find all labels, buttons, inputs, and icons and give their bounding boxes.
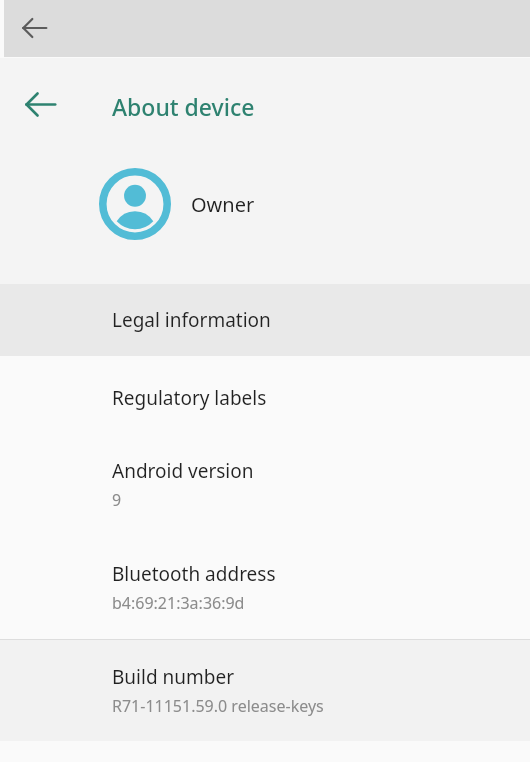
button[interactable]: Regulatory labels [0,356,530,433]
button[interactable]: Navigate up [17,81,63,127]
staticText: Owner [191,191,255,218]
button[interactable]: Android version [0,433,530,536]
staticText: b4:69:21:3a:36:9d [112,592,245,614]
button[interactable]: Owner [0,148,530,260]
button[interactable]: Build number [0,640,530,741]
staticText: Android version [112,458,254,484]
staticText: Legal information [112,307,271,333]
button[interactable]: Back [12,6,56,50]
staticText: About device [112,91,255,122]
button[interactable]: Legal information [0,284,530,356]
button[interactable]: Bluetooth address [0,536,530,639]
staticText: Build number [112,664,235,690]
staticText: R71-11151.59.0 release-keys [112,695,324,717]
staticText: Regulatory labels [112,385,267,411]
staticText: 9 [112,489,122,511]
staticText: Bluetooth address [112,561,276,587]
